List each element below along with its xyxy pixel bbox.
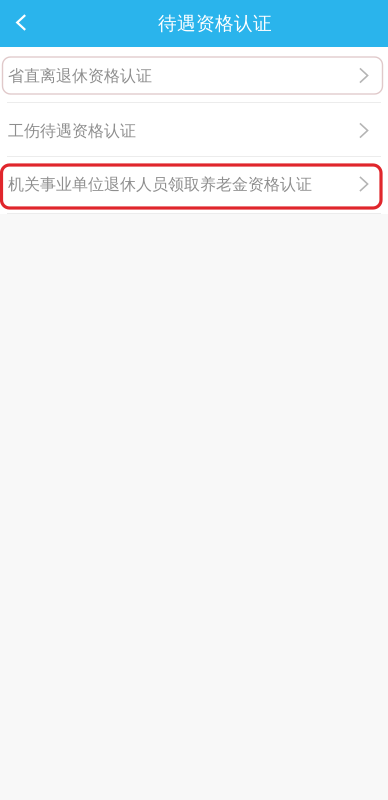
staticText: 工伤待遇资格认证	[8, 121, 136, 141]
button[interactable]: 省直离退休资格认证	[0, 47, 388, 102]
button[interactable]: 工伤待遇资格认证	[0, 103, 388, 156]
staticText: 省直离退休资格认证	[8, 66, 152, 86]
staticText: 待遇资格认证	[158, 12, 272, 35]
button[interactable]: 机关事业单位退休人员领取养老金资格认证	[0, 157, 388, 213]
button[interactable]: Back	[0, 0, 42, 47]
staticText: 机关事业单位退休人员领取养老金资格认证	[8, 175, 312, 194]
